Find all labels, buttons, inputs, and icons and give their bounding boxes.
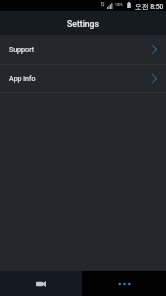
staticText: 오전 8:50 <box>135 2 164 11</box>
staticText: Support <box>9 45 35 53</box>
staticText: Settings <box>67 19 99 29</box>
button[interactable]: More options <box>82 271 166 296</box>
button[interactable]: App info <box>0 65 166 92</box>
button[interactable]: Support <box>0 35 166 64</box>
staticText: App info <box>9 74 36 82</box>
staticText: 100% <box>115 3 123 7</box>
button[interactable]: Video call <box>0 271 82 296</box>
